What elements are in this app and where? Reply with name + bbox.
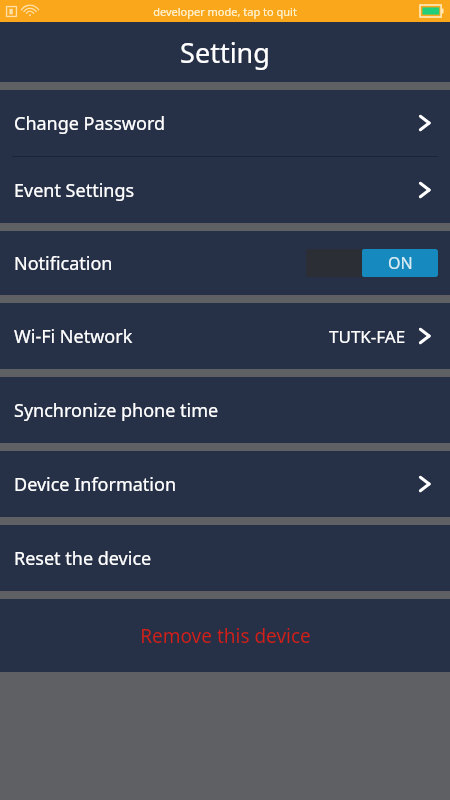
staticText: Wi-Fi Network: [14, 324, 133, 349]
staticText: developer mode, tap to quit: [153, 4, 297, 19]
staticText: Change Password: [14, 111, 166, 136]
button[interactable]: Change Password: [0, 90, 450, 156]
staticText: Remove this device: [140, 623, 311, 649]
staticText: Event Settings: [14, 178, 135, 203]
button[interactable]: Synchronize phone time: [0, 377, 450, 443]
button[interactable]: Reset the device: [0, 525, 450, 591]
staticText: ON: [388, 252, 413, 274]
staticText: TUTK-FAE: [329, 325, 406, 348]
staticText: Notification: [14, 251, 113, 276]
button[interactable]: ON: [306, 249, 438, 277]
button[interactable]: Device Information: [0, 451, 450, 517]
button[interactable]: Remove this device: [0, 599, 450, 672]
button[interactable]: Wi-Fi Network: [0, 303, 450, 369]
staticText: Setting: [180, 34, 270, 71]
button[interactable]: Event Settings: [0, 157, 450, 223]
button[interactable]: Notification: [0, 231, 450, 295]
staticText: Synchronize phone time: [14, 398, 219, 423]
staticText: Device Information: [14, 472, 177, 497]
staticText: Reset the device: [14, 546, 152, 571]
